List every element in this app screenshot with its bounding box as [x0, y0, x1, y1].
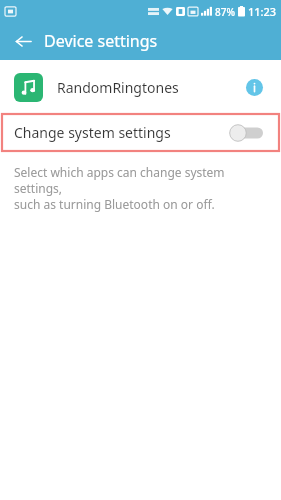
button[interactable]: Back [8, 26, 38, 56]
staticText: Select which apps can change system sett… [14, 164, 261, 212]
staticText: Change system settings [14, 123, 229, 142]
staticText: Device settings [44, 30, 158, 52]
button[interactable]: App info [241, 74, 267, 100]
button[interactable]: Change system settings [2, 114, 279, 151]
staticText: 87% [215, 5, 235, 19]
button[interactable]: RandomRingtones [0, 60, 281, 114]
staticText: RandomRingtones [57, 78, 241, 97]
staticText: 11:23 [248, 4, 277, 19]
